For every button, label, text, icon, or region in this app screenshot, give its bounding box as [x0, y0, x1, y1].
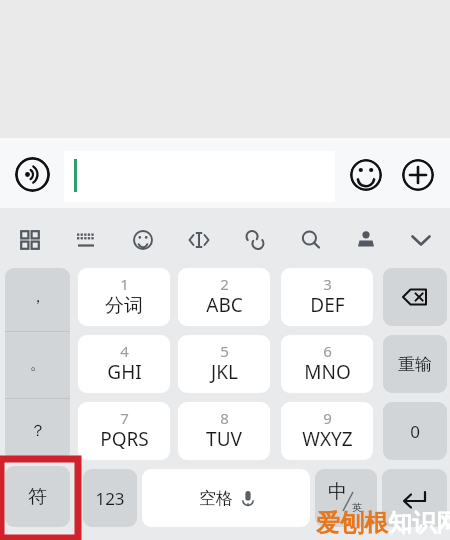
staticText: 爱刨根 [316, 508, 388, 538]
staticText: 3 [323, 274, 332, 294]
button[interactable]: 符 [5, 466, 70, 527]
staticText: 符 [28, 485, 47, 509]
button[interactable]: 空格 [142, 469, 310, 527]
staticText: ？ [30, 421, 46, 441]
staticText: 分词 [105, 294, 143, 318]
button[interactable]: Text edit [181, 222, 217, 258]
staticText: ， [30, 287, 46, 307]
button[interactable]: 0 [383, 402, 447, 460]
staticText: 。 [30, 354, 46, 374]
button[interactable]: Emoji [125, 222, 161, 258]
staticText: 9 [323, 408, 332, 428]
button[interactable]: Voice input [15, 157, 50, 192]
button[interactable]: 。 [5, 335, 70, 393]
staticText: 1 [120, 274, 129, 294]
button[interactable]: Backspace [383, 268, 447, 326]
staticText: DEF [310, 292, 345, 318]
button[interactable]: Apps [12, 222, 48, 258]
button[interactable]: 5 [178, 335, 270, 393]
button[interactable]: Keyboard [68, 222, 104, 258]
button[interactable]: 1 [78, 268, 170, 326]
button[interactable]: Clipboard [237, 222, 273, 258]
staticText: TUV [206, 426, 242, 452]
button[interactable]: Enter [383, 469, 447, 527]
staticText: 7 [120, 408, 129, 428]
staticText: PQRS [100, 426, 149, 452]
button[interactable]: 重输 [383, 335, 447, 393]
staticText: 6 [323, 341, 332, 361]
staticText: 123 [95, 487, 125, 510]
staticText: 2 [220, 274, 229, 294]
button[interactable]: 2 [178, 268, 270, 326]
button[interactable]: 3 [281, 268, 373, 326]
button[interactable]: Sticker [348, 222, 384, 258]
staticText: 英 [352, 501, 362, 514]
button[interactable]: 4 [78, 335, 170, 393]
button[interactable]: ？ [5, 402, 70, 460]
button[interactable]: 8 [178, 402, 270, 460]
staticText: GHI [107, 359, 142, 385]
button[interactable]: Search [293, 222, 329, 258]
staticText: 重输 [398, 354, 432, 375]
staticText: 中 [328, 480, 347, 504]
staticText: 5 [220, 341, 229, 361]
button[interactable] [64, 151, 335, 202]
staticText: 4 [120, 341, 129, 361]
button[interactable]: 中 [315, 469, 377, 527]
button[interactable]: 6 [281, 335, 373, 393]
button[interactable]: Collapse [403, 222, 439, 258]
button[interactable]: ， [5, 268, 70, 326]
staticText: 空格 [199, 488, 233, 509]
staticText: 0 [410, 420, 420, 443]
button[interactable]: Emoji [350, 159, 382, 191]
button[interactable]: 7 [78, 402, 170, 460]
staticText: MNO [304, 359, 351, 385]
button[interactable]: Enter key [382, 469, 446, 527]
button[interactable]: Add [402, 159, 434, 191]
staticText: ABC [206, 292, 243, 318]
staticText: 知识网 [388, 508, 450, 538]
staticText: WXYZ [302, 426, 353, 452]
staticText: 8 [220, 408, 229, 428]
button[interactable]: 9 [281, 402, 373, 460]
staticText: JKL [211, 359, 238, 385]
button[interactable]: 123 [83, 469, 137, 527]
